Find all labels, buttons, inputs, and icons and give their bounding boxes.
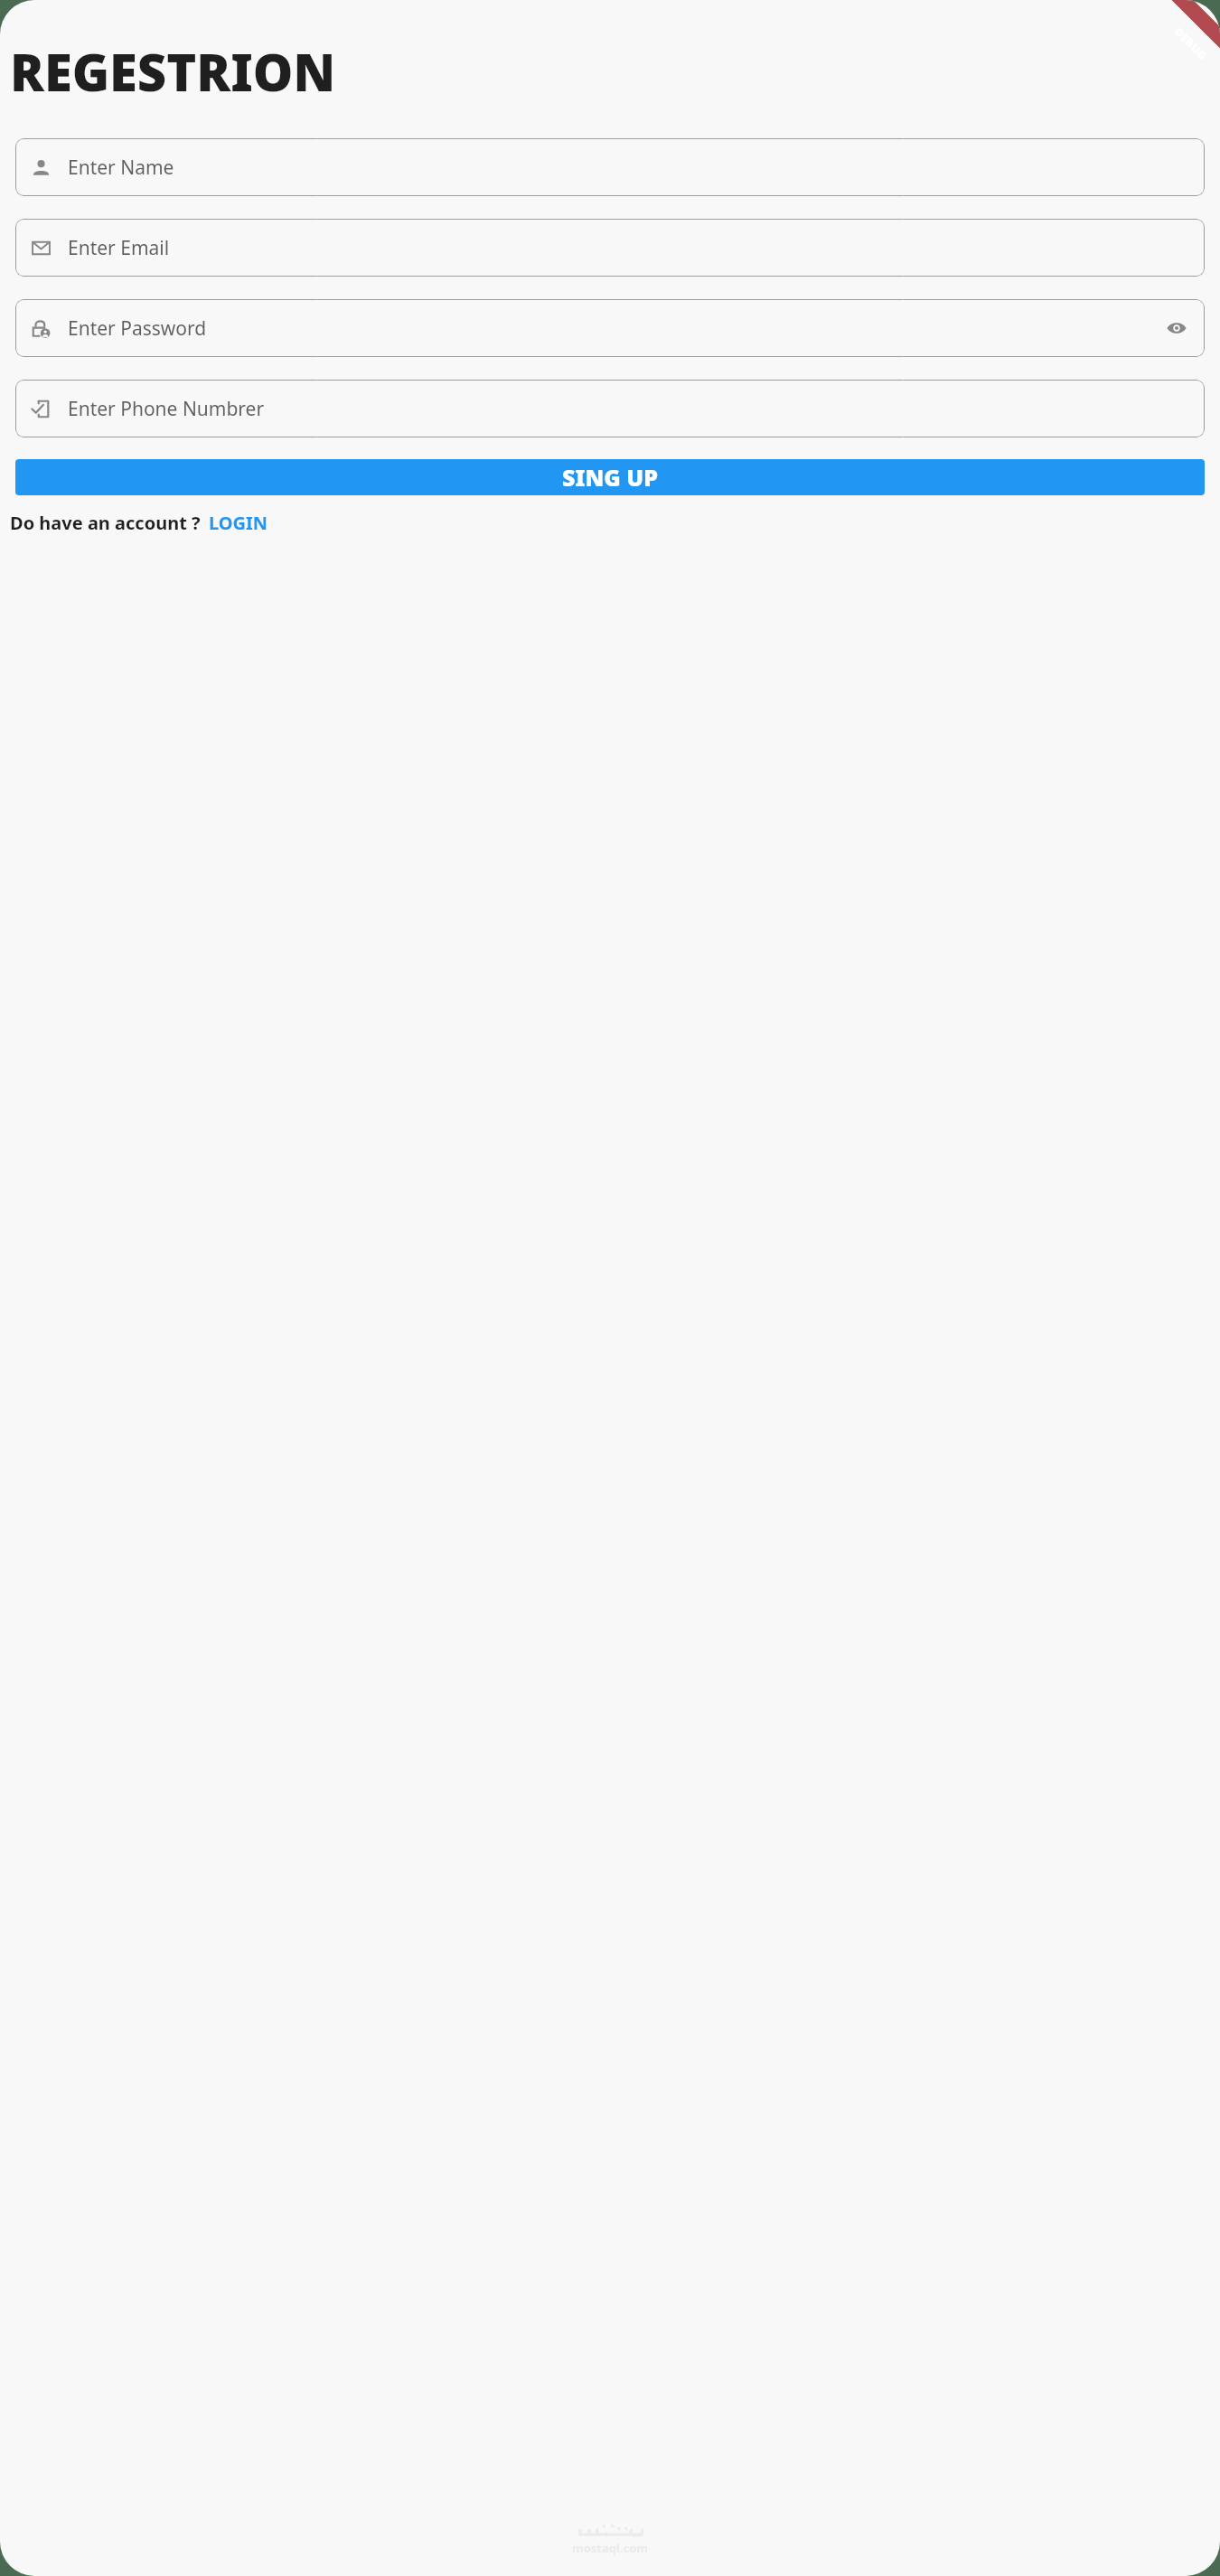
button[interactable]: Enter Phone Numbrer bbox=[15, 380, 1205, 437]
staticText: Do have an account ? bbox=[10, 511, 201, 535]
button[interactable]: LOGIN bbox=[209, 511, 268, 535]
button[interactable]: Enter Email bbox=[15, 219, 1205, 277]
staticText: SING UP bbox=[562, 462, 659, 493]
button[interactable]: SING UP bbox=[15, 459, 1205, 495]
button[interactable]: Enter Password bbox=[15, 299, 1205, 357]
staticText: REGESTRION bbox=[10, 37, 336, 106]
staticText: Enter Name bbox=[68, 155, 174, 181]
staticText: Enter Phone Numbrer bbox=[68, 396, 265, 422]
staticText: Enter Password bbox=[68, 315, 207, 342]
staticText: Enter Email bbox=[68, 235, 170, 261]
button[interactable]: Enter Name bbox=[15, 138, 1205, 196]
staticText: mostaql.com bbox=[572, 2540, 649, 2556]
staticText: LOGIN bbox=[209, 511, 268, 535]
staticText: DEBUG bbox=[1172, 24, 1210, 63]
button[interactable]: Show password bbox=[1165, 316, 1188, 340]
